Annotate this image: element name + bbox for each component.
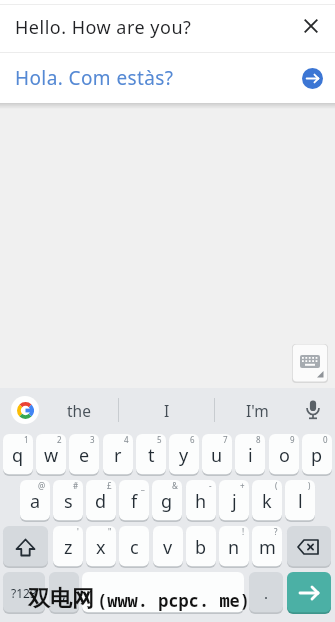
staticText: , [62, 583, 67, 603]
button[interactable]: n [219, 526, 249, 568]
staticText: p [311, 443, 323, 468]
staticText: 4 [124, 434, 129, 445]
button[interactable]: I [120, 388, 213, 432]
button[interactable] [82, 572, 244, 614]
staticText: (www. pcpc. me) [97, 589, 250, 612]
button[interactable]: z [53, 526, 83, 568]
staticText: i [248, 443, 253, 468]
staticText: u [211, 443, 223, 468]
staticText: . [264, 583, 269, 603]
staticText: c [130, 535, 139, 560]
staticText: n [228, 535, 240, 560]
button[interactable] [287, 572, 331, 614]
staticText: 双电网 [28, 585, 94, 613]
button[interactable]: I'm [216, 388, 298, 432]
button[interactable]: w [36, 434, 66, 476]
staticText: the [67, 400, 91, 421]
staticText: # [73, 480, 79, 491]
staticText: Hola. Com estàs? [15, 65, 174, 91]
button[interactable]: k [252, 480, 282, 522]
staticText: ? [274, 526, 278, 537]
button[interactable]: u [202, 434, 232, 476]
staticText: 2 [57, 434, 62, 445]
button[interactable]: l [285, 480, 315, 522]
button[interactable] [297, 12, 325, 40]
staticText: b [195, 535, 207, 560]
staticText: t [148, 443, 155, 468]
staticText: 7 [223, 434, 228, 445]
staticText: I [164, 400, 170, 421]
button[interactable]: . [249, 572, 283, 614]
button[interactable]: c [119, 526, 149, 568]
staticText: e [79, 443, 90, 468]
button[interactable]: , [49, 572, 79, 614]
staticText: z [64, 535, 73, 560]
button[interactable]: g [152, 480, 182, 522]
staticText: Hello. How are you? [15, 15, 192, 40]
staticText: ! [242, 526, 245, 537]
button[interactable] [302, 68, 323, 89]
staticText: @ [38, 480, 46, 491]
button[interactable] [292, 344, 328, 383]
button[interactable]: o [269, 434, 299, 476]
button[interactable]: t [136, 434, 166, 476]
button[interactable]: a [20, 480, 50, 522]
staticText: q [12, 443, 24, 468]
staticText: 1 [24, 434, 29, 445]
staticText: r [114, 443, 122, 468]
staticText: 5 [157, 434, 162, 445]
staticText: + [240, 480, 245, 491]
staticText: f [131, 489, 138, 514]
staticText: ?123 [11, 585, 37, 601]
staticText: - [209, 480, 212, 491]
staticText: 8 [256, 434, 261, 445]
staticText: k [262, 489, 272, 514]
staticText: ) [308, 480, 311, 491]
button[interactable]: the [42, 388, 116, 432]
staticText: £ [107, 480, 112, 491]
button[interactable]: p [302, 434, 332, 476]
button[interactable]: b [186, 526, 216, 568]
staticText: m [259, 535, 276, 560]
button[interactable]: q [3, 434, 33, 476]
staticText: x [96, 535, 106, 560]
button[interactable] [300, 399, 326, 421]
button[interactable] [287, 526, 331, 568]
staticText: a [30, 489, 41, 514]
button[interactable]: e [69, 434, 99, 476]
staticText: d [95, 489, 107, 514]
button[interactable]: d [86, 480, 116, 522]
staticText: ( [275, 480, 278, 491]
button[interactable]: ?123 [3, 572, 45, 614]
button[interactable]: v [153, 526, 183, 568]
staticText: o [279, 443, 290, 468]
button[interactable]: r [103, 434, 133, 476]
staticText: h [195, 489, 207, 514]
staticText: 9 [290, 434, 295, 445]
staticText: y [179, 443, 189, 468]
button[interactable]: f [119, 480, 149, 522]
staticText: ' [77, 526, 79, 537]
staticText: j [232, 489, 237, 514]
staticText: 6 [190, 434, 195, 445]
staticText: s [64, 489, 73, 514]
staticText: v [163, 535, 173, 560]
button[interactable]: h [186, 480, 216, 522]
button[interactable]: x [86, 526, 116, 568]
button[interactable]: i [235, 434, 265, 476]
staticText: 3 [90, 434, 95, 445]
staticText: " [108, 526, 112, 537]
button[interactable]: j [219, 480, 249, 522]
staticText: g [161, 489, 173, 514]
staticText: l [298, 489, 303, 514]
staticText: & [172, 480, 178, 491]
staticText: 0 [323, 434, 328, 445]
staticText: _ [141, 480, 145, 491]
button[interactable]: y [169, 434, 199, 476]
button[interactable]: m [252, 526, 282, 568]
staticText: w [44, 443, 59, 468]
button[interactable] [3, 526, 48, 568]
button[interactable] [11, 396, 39, 424]
staticText: I'm [246, 400, 269, 421]
button[interactable]: s [53, 480, 83, 522]
